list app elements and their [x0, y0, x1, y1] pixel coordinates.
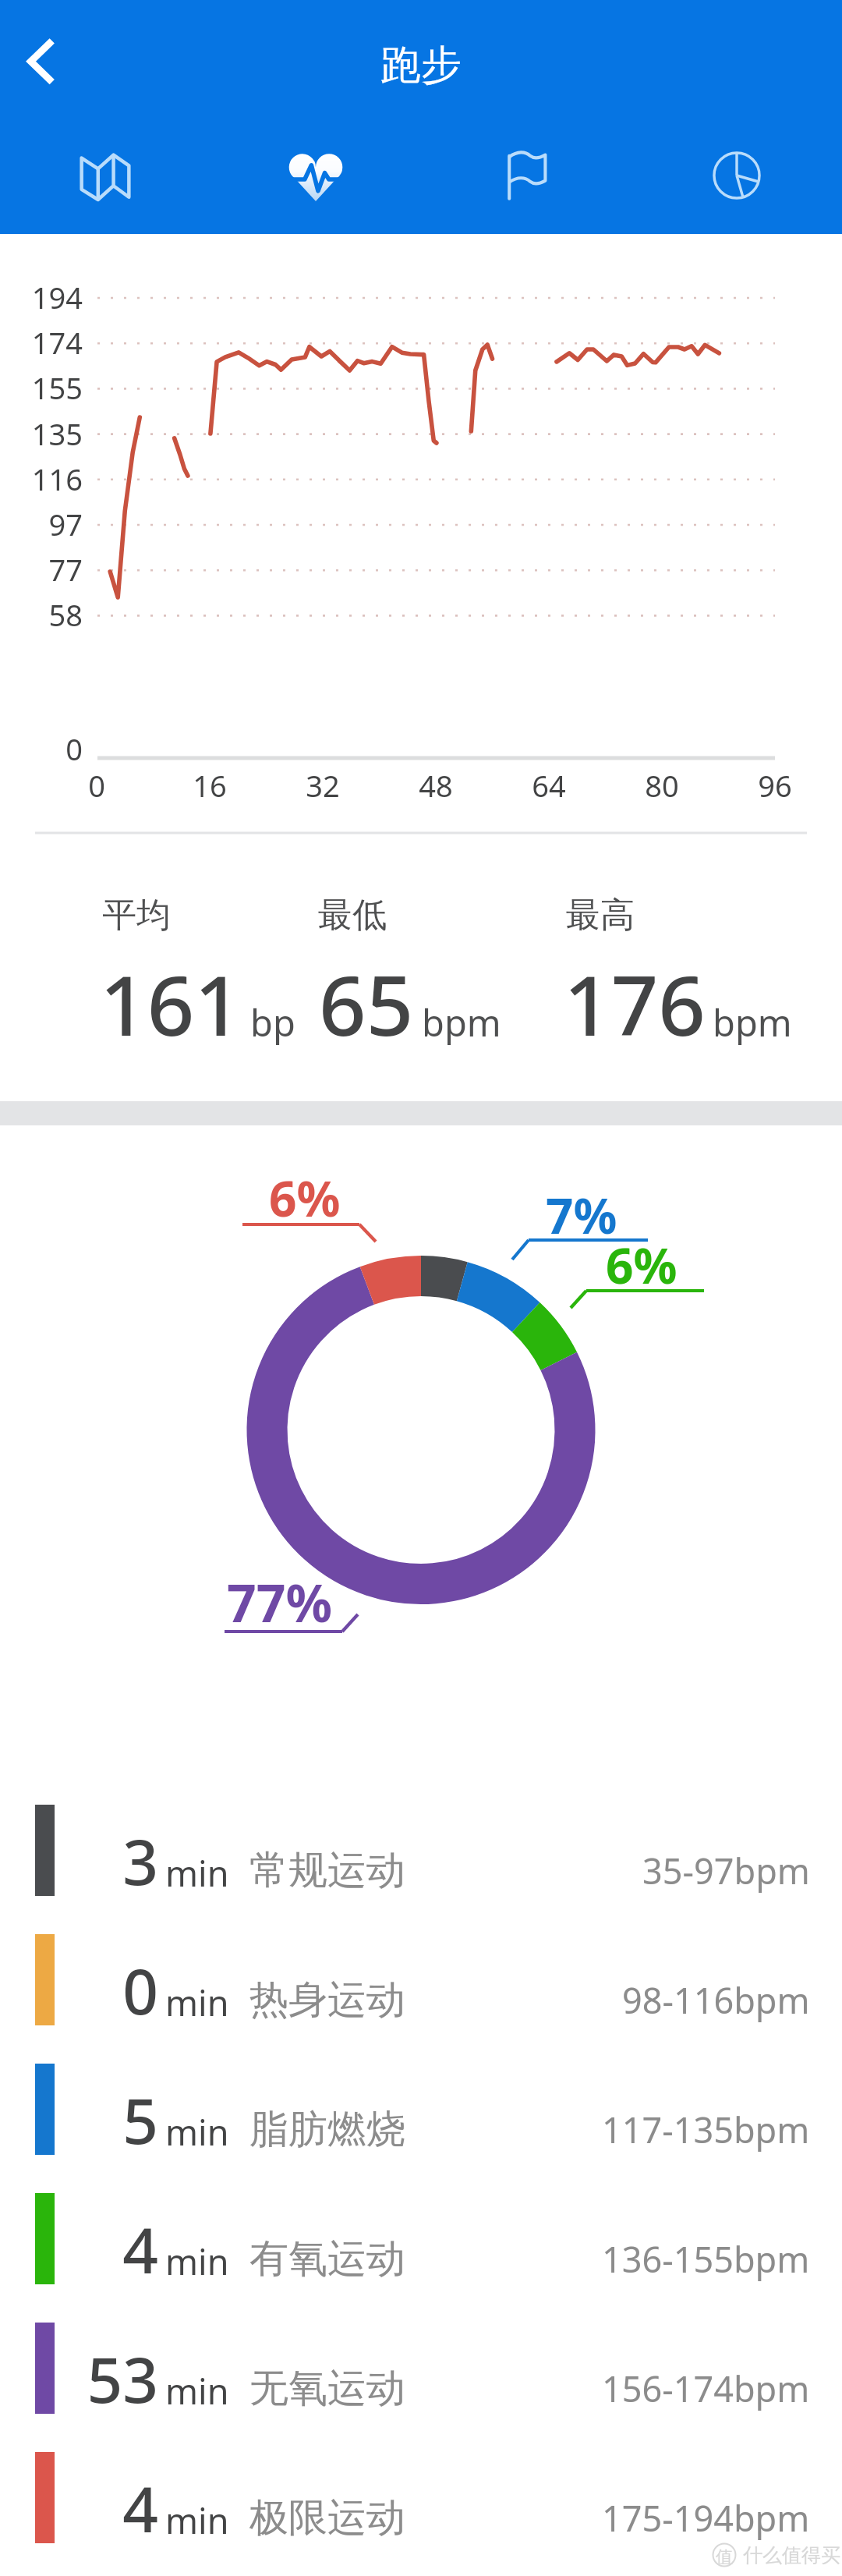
- staticText: 156-174bpm: [602, 2365, 810, 2412]
- staticText: 0: [0, 728, 83, 769]
- staticText: min: [165, 1849, 229, 1897]
- staticText: bpm: [713, 997, 792, 1047]
- staticText: 174: [0, 322, 83, 363]
- staticText: 热身运动: [249, 1975, 405, 2025]
- button[interactable]: Map: [0, 129, 210, 222]
- staticText: 常规运动: [249, 1846, 405, 1895]
- staticText: 最低: [318, 894, 387, 937]
- staticText: 117-135bpm: [602, 2106, 810, 2153]
- button[interactable]: Back: [0, 0, 87, 117]
- staticText: 35-97bpm: [642, 1847, 810, 1894]
- button[interactable]: Laps: [421, 129, 631, 222]
- staticText: 53: [18, 2336, 158, 2421]
- button[interactable]: 0: [0, 1915, 842, 2044]
- staticText: 跑步: [380, 40, 462, 91]
- staticText: 116: [0, 459, 83, 499]
- staticText: 无氧运动: [249, 2364, 405, 2413]
- staticText: 6%: [606, 1232, 677, 1298]
- staticText: 0: [18, 1947, 158, 2032]
- staticText: 5: [18, 2077, 158, 2162]
- button[interactable]: 3: [0, 1785, 842, 1915]
- staticText: 48: [381, 765, 490, 806]
- button[interactable]: Statistics: [631, 129, 842, 222]
- staticText: 什么值得买: [743, 2543, 840, 2567]
- staticText: 3: [18, 1818, 158, 1903]
- staticText: 极限运动: [249, 2493, 405, 2542]
- staticText: 64: [494, 765, 603, 806]
- staticText: 161: [100, 948, 242, 1060]
- staticText: 77: [0, 549, 83, 590]
- staticText: 135: [0, 413, 83, 454]
- staticText: min: [165, 2238, 229, 2285]
- staticText: 77%: [227, 1567, 333, 1637]
- staticText: 176: [564, 948, 706, 1060]
- staticText: min: [165, 2367, 229, 2415]
- staticText: 96: [720, 765, 830, 806]
- staticText: 0: [42, 765, 151, 806]
- staticText: 6%: [269, 1165, 341, 1231]
- staticText: 80: [607, 765, 716, 806]
- button[interactable]: 4: [0, 2432, 842, 2562]
- staticText: 4: [18, 2465, 158, 2550]
- staticText: 194: [0, 277, 83, 317]
- button[interactable]: 5: [0, 2044, 842, 2174]
- staticText: 值: [716, 2546, 733, 2568]
- staticText: 58: [0, 594, 83, 635]
- staticText: min: [165, 2108, 229, 2156]
- button[interactable]: 4: [0, 2174, 842, 2303]
- staticText: 16: [155, 765, 264, 806]
- staticText: 98-116bpm: [622, 1976, 810, 2024]
- staticText: bp: [250, 997, 295, 1047]
- staticText: 脂肪燃烧: [249, 2105, 405, 2154]
- staticText: 有氧运动: [249, 2234, 405, 2284]
- staticText: 155: [0, 367, 83, 408]
- button[interactable]: Heart rate: [210, 129, 421, 222]
- staticText: bpm: [422, 997, 501, 1047]
- staticText: 平均: [102, 894, 171, 937]
- staticText: 136-155bpm: [602, 2235, 810, 2283]
- staticText: min: [165, 2496, 229, 2544]
- staticText: 65: [319, 948, 414, 1060]
- staticText: 最高: [566, 894, 635, 937]
- staticText: 97: [0, 504, 83, 544]
- button[interactable]: 53: [0, 2303, 842, 2432]
- staticText: 175-194bpm: [602, 2494, 810, 2542]
- staticText: 7%: [546, 1182, 617, 1248]
- staticText: 32: [268, 765, 377, 806]
- staticText: 4: [18, 2206, 158, 2291]
- staticText: min: [165, 1979, 229, 2026]
